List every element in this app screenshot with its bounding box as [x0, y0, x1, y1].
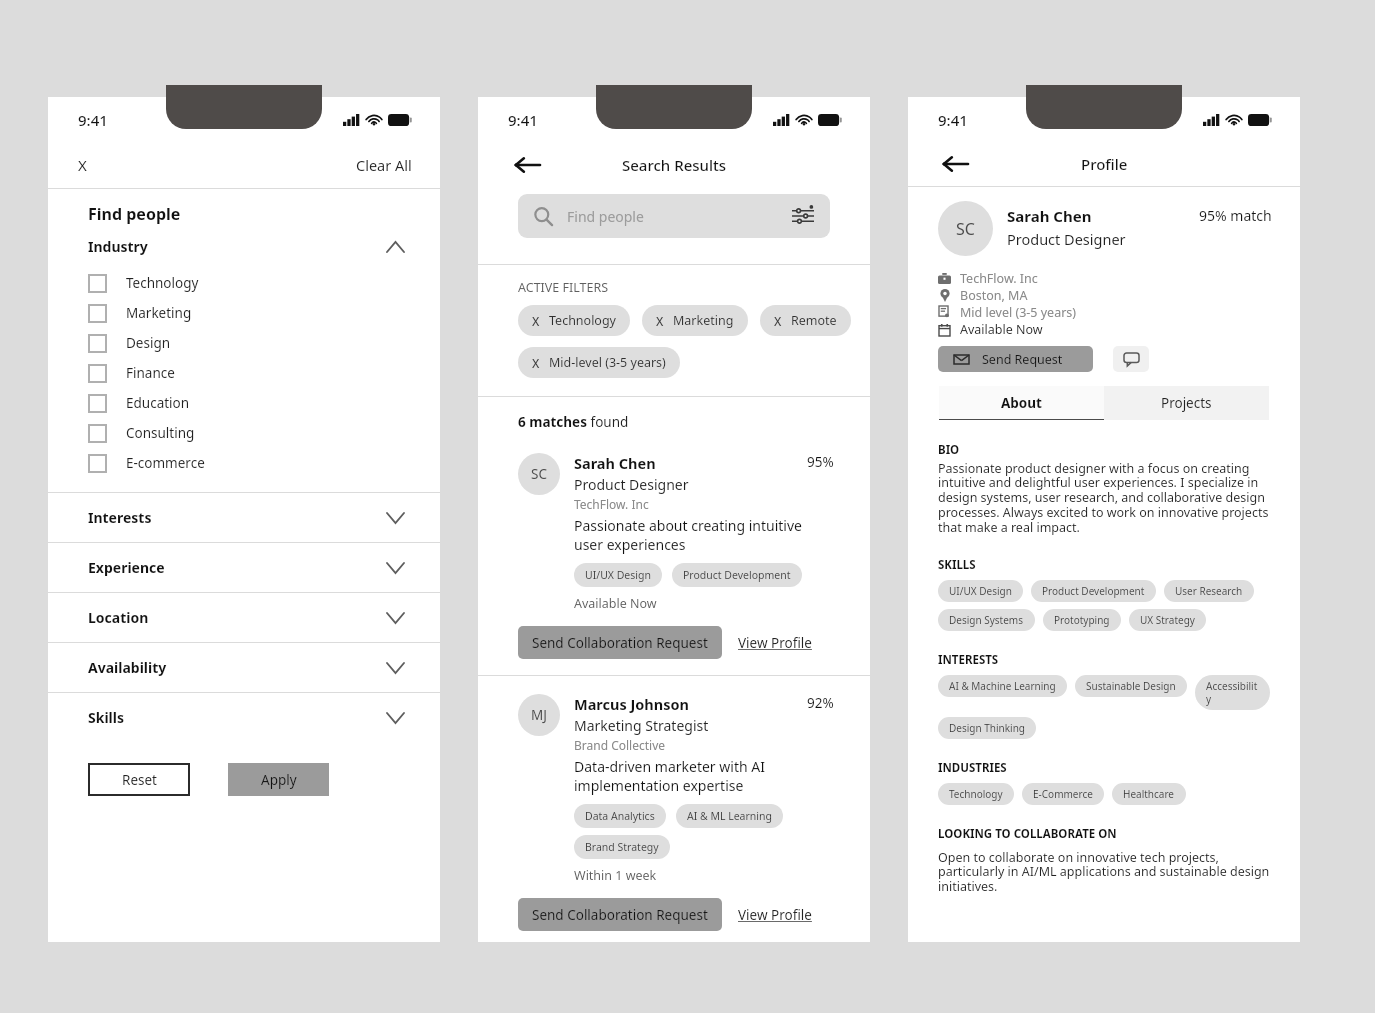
button[interactable]: Send Collaboration Request	[518, 898, 722, 931]
button[interactable]: Consulting	[48, 418, 440, 448]
staticText: Find people	[567, 207, 792, 226]
staticText: Data-driven marketer with AI implementat…	[574, 757, 834, 795]
button[interactable]: Find people	[518, 194, 830, 238]
button[interactable]: X	[760, 305, 851, 336]
staticText: X	[78, 155, 87, 175]
button[interactable]: Data Analytics	[574, 804, 666, 828]
staticText: ACTIVE FILTERS	[518, 279, 609, 296]
staticText: Prototyping	[1054, 613, 1110, 627]
button[interactable]: Experience	[48, 543, 440, 592]
staticText: Projects	[1161, 394, 1212, 412]
staticText: Search Results	[622, 155, 727, 175]
button[interactable]: Reset	[88, 763, 190, 796]
staticText: UX Strategy	[1140, 613, 1195, 627]
staticText: Consulting	[126, 424, 195, 442]
staticText: Brand Collective	[574, 737, 666, 753]
button[interactable]: Technology	[48, 268, 440, 298]
button[interactable]: Marketing	[48, 298, 440, 328]
staticText: Available Now	[574, 595, 657, 612]
button[interactable]: Clear All	[356, 155, 412, 175]
staticText: Interests	[88, 508, 387, 527]
button[interactable]: Apply	[228, 763, 329, 796]
staticText: Availability	[88, 658, 387, 677]
button[interactable]: Prototyping	[1043, 609, 1121, 631]
staticText: INDUSTRIES	[938, 760, 1007, 776]
staticText: Skills	[88, 708, 387, 727]
staticText: Send Request	[982, 351, 1063, 368]
button[interactable]: Education	[48, 388, 440, 418]
button[interactable]: E-commerce	[48, 448, 440, 478]
staticText: TechFlow. Inc	[960, 270, 1038, 287]
staticText: MJ	[531, 706, 547, 724]
button[interactable]: Brand Strategy	[574, 835, 670, 859]
button[interactable]: View Profile	[734, 902, 816, 928]
staticText: View Profile	[738, 634, 812, 652]
button[interactable]: User Research	[1164, 580, 1254, 602]
staticText: Marketing Strategist	[574, 716, 709, 735]
staticText: Technology	[949, 787, 1003, 801]
staticText: X	[656, 313, 664, 329]
staticText: Finance	[126, 364, 175, 382]
staticText: Marketing	[126, 304, 192, 322]
staticText: Remote	[791, 312, 837, 329]
button[interactable]: UX Strategy	[1129, 609, 1206, 631]
button[interactable]: Skills	[48, 693, 440, 742]
button[interactable]: X	[518, 305, 630, 336]
staticText: Technology	[126, 274, 199, 292]
staticText: Send Collaboration Request	[532, 906, 708, 924]
staticText: 9:41	[508, 110, 538, 130]
staticText: About	[1001, 394, 1042, 412]
button[interactable]: About	[939, 386, 1104, 420]
button[interactable]: Interests	[48, 493, 440, 542]
button[interactable]: Close	[78, 155, 87, 175]
button[interactable]: Product Development	[672, 563, 802, 587]
staticText: Product Designer	[1007, 229, 1126, 249]
staticText: INTERESTS	[938, 652, 999, 668]
button[interactable]: E-Commerce	[1022, 783, 1104, 805]
button[interactable]: X	[642, 305, 748, 336]
button[interactable]: Location	[48, 593, 440, 642]
button[interactable]: Back	[510, 148, 544, 182]
button[interactable]: View Profile	[734, 630, 816, 656]
staticText: Brand Strategy	[585, 840, 659, 854]
button[interactable]: AI & Machine Learning	[938, 675, 1067, 697]
staticText: Data Analytics	[585, 809, 655, 823]
button[interactable]: Sustainable Design	[1075, 675, 1187, 697]
staticText: E-commerce	[126, 454, 205, 472]
button[interactable]: UI/UX Design	[938, 580, 1023, 602]
staticText: Sarah Chen	[574, 453, 807, 473]
button[interactable]: Healthcare	[1112, 783, 1186, 805]
staticText: Sarah Chen	[1007, 206, 1092, 226]
staticText: Profile	[1081, 154, 1128, 174]
staticText: Marcus Johnson	[574, 694, 807, 714]
staticText: Product Development	[1042, 584, 1145, 598]
staticText: Passionate product designer with a focus…	[938, 460, 1270, 536]
button[interactable]: UI/UX Design	[574, 563, 662, 587]
button[interactable]: Design Systems	[938, 609, 1035, 631]
staticText: Mid-level (3-5 years)	[549, 354, 666, 371]
button[interactable]: Send Collaboration Request	[518, 626, 722, 659]
staticText: Industry	[88, 237, 387, 256]
staticText: X	[774, 313, 782, 329]
button[interactable]: Message	[1113, 346, 1149, 372]
button[interactable]: Send Request	[938, 346, 1093, 372]
staticText: 9:41	[938, 110, 968, 130]
button[interactable]: Finance	[48, 358, 440, 388]
button[interactable]: Back	[938, 147, 972, 181]
button[interactable]: Filters	[792, 205, 814, 227]
staticText: 92%	[807, 694, 834, 712]
button[interactable]: AI & ML Learning	[676, 804, 783, 828]
staticText: E-Commerce	[1033, 787, 1093, 801]
staticText: Experience	[88, 558, 387, 577]
staticText: AI & ML Learning	[687, 809, 772, 823]
button[interactable]: X	[518, 347, 680, 378]
staticText: Find people	[88, 203, 181, 225]
button[interactable]: Design	[48, 328, 440, 358]
button[interactable]: Projects	[1104, 386, 1269, 420]
staticText: X	[532, 355, 540, 371]
button[interactable]: Design Thinking	[938, 717, 1036, 739]
button[interactable]: Availability	[48, 643, 440, 692]
button[interactable]: Accessibility	[1195, 675, 1270, 710]
button[interactable]: Technology	[938, 783, 1014, 805]
button[interactable]: Product Development	[1031, 580, 1156, 602]
